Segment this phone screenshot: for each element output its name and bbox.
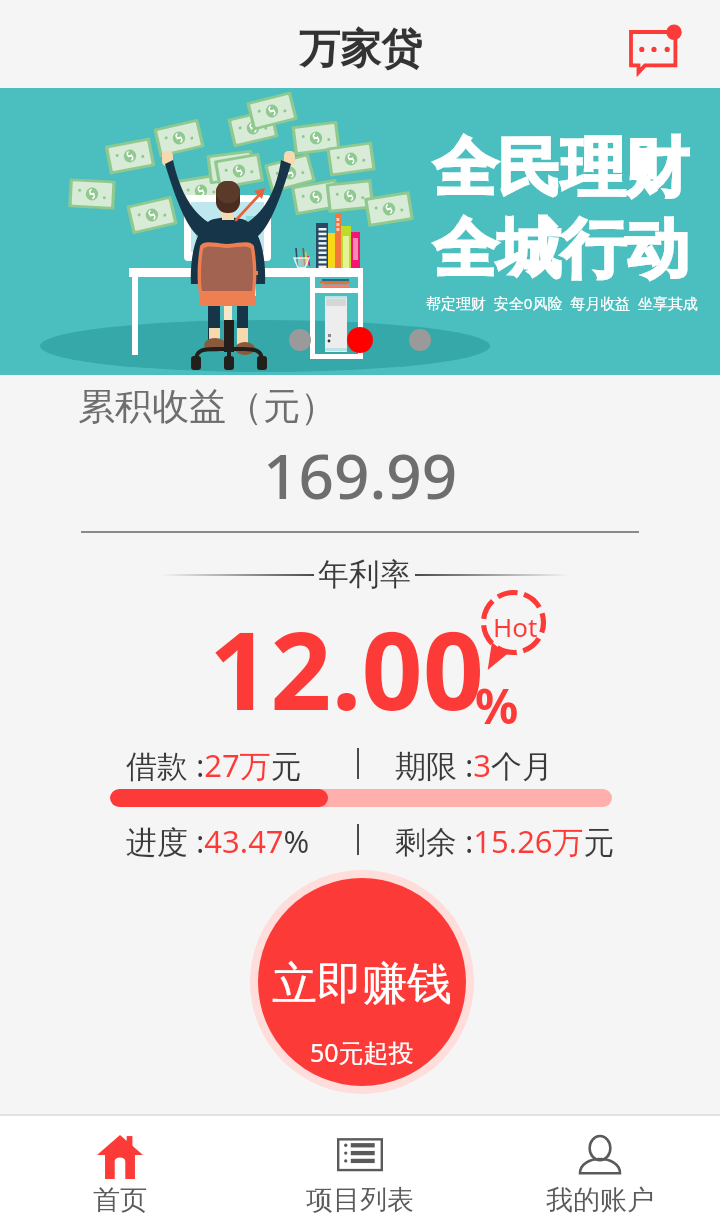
staticText: 帮定理财 安全0风险 每月收益 坐享其成 bbox=[426, 293, 698, 313]
button[interactable]: 我的账户 bbox=[480, 1114, 720, 1231]
staticText: 期限 :3个月 bbox=[395, 744, 554, 784]
staticText: 169.99 bbox=[263, 433, 458, 517]
staticText: 进度 :43.47% bbox=[126, 820, 310, 860]
staticText: 累积收益（元） bbox=[78, 383, 337, 430]
staticText: 万家贷 bbox=[299, 24, 422, 76]
staticText: 首页 bbox=[93, 1183, 147, 1217]
staticText: 借款 :27万元 bbox=[126, 744, 302, 784]
staticText: 50元起投 bbox=[310, 1035, 414, 1069]
button[interactable]: 项目列表 bbox=[240, 1114, 480, 1231]
button[interactable]: 立即赚钱 bbox=[258, 878, 466, 1086]
staticText: 全民理财 bbox=[433, 128, 689, 209]
staticText: 我的账户 bbox=[546, 1183, 654, 1217]
staticText: 项目列表 bbox=[306, 1183, 414, 1217]
button[interactable]: Messages bbox=[620, 20, 684, 76]
staticText: 剩余 :15.26万元 bbox=[395, 820, 615, 860]
staticText: 立即赚钱 bbox=[272, 956, 452, 1013]
button[interactable]: 首页 bbox=[0, 1114, 240, 1231]
staticText: 年利率 bbox=[318, 555, 411, 594]
staticText: % bbox=[475, 673, 519, 738]
staticText: 全城行动 bbox=[433, 209, 689, 290]
staticText: 12.00 bbox=[209, 596, 484, 742]
staticText: Hot bbox=[493, 609, 538, 644]
